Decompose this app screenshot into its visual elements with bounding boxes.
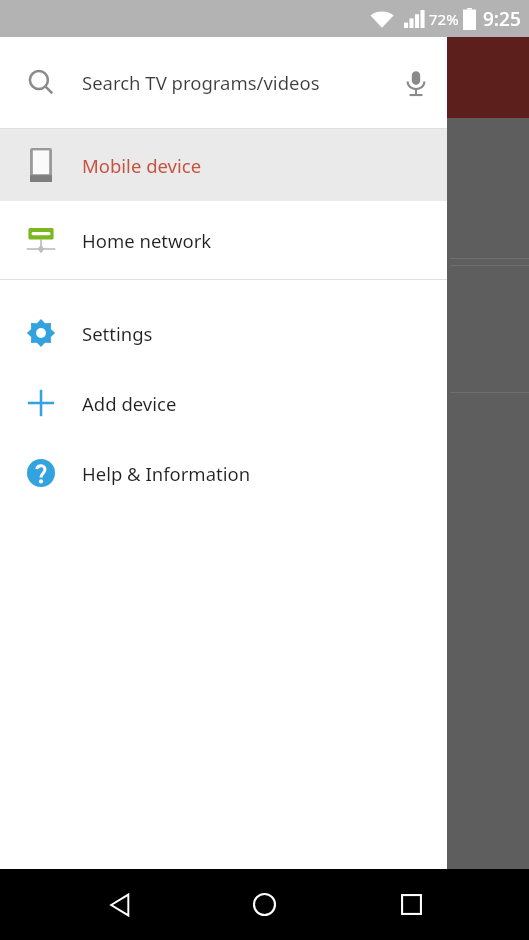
button[interactable]: Recents (375, 869, 447, 940)
button[interactable]: Settings (0, 298, 447, 368)
staticText: Search TV programs/videos (82, 70, 385, 95)
button[interactable]: Home (228, 869, 300, 940)
button[interactable]: Help & Information (0, 438, 447, 508)
button[interactable]: Mobile device (0, 129, 447, 201)
staticText: Add device (82, 391, 177, 416)
button[interactable]: Add device (0, 368, 447, 438)
staticText: Mobile device (82, 153, 202, 178)
button[interactable]: Search TV programs/videos (0, 37, 447, 128)
staticText: 9:25 (483, 6, 521, 32)
button[interactable]: Voice search (385, 37, 447, 128)
staticText: Settings (82, 321, 153, 346)
staticText: Home network (82, 228, 212, 253)
staticText: 72% (429, 9, 459, 29)
staticText: Help & Information (82, 461, 251, 486)
button[interactable]: Back (84, 869, 156, 940)
button[interactable]: Home network (0, 201, 447, 279)
